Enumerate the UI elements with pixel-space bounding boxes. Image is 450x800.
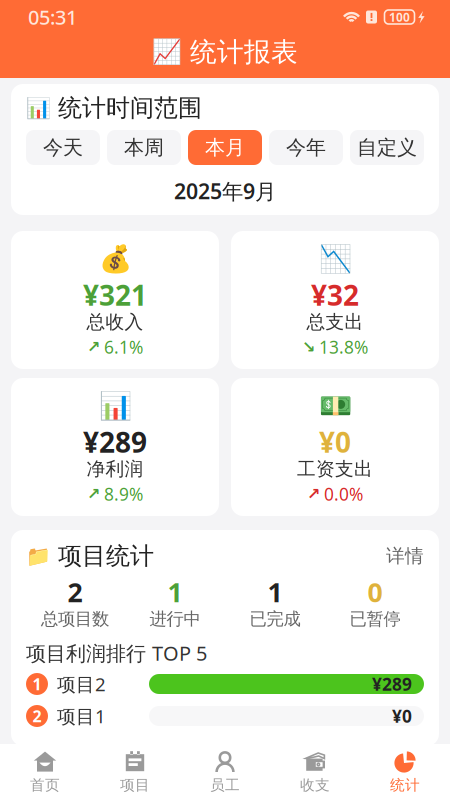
staticText: 6.1% [104,335,143,358]
button[interactable]: 收支 [270,748,360,796]
staticText: 总支出 [306,310,363,333]
staticText: 1 [167,574,182,610]
button[interactable]: 本月 [188,130,262,165]
staticText: ¥32 [311,276,359,314]
staticText: 1 [32,673,41,695]
staticText: 📁 [26,545,51,567]
staticText: 今年 [286,135,326,160]
staticText: 总项目数 [41,608,109,630]
staticText: ¥321 [83,276,147,314]
button[interactable]: 详情 [386,544,424,567]
button[interactable]: 员工 [180,748,270,796]
staticText: ↗ [307,485,320,503]
staticText: 项目1 [57,704,106,728]
staticText: 进行中 [149,608,200,630]
staticText: ¥289 [83,423,147,461]
button[interactable]: 项目 [90,748,180,796]
staticText: 收支 [300,776,330,794]
button[interactable]: 今年 [269,130,343,165]
button[interactable]: 今天 [26,130,100,165]
staticText: 员工 [210,776,240,794]
staticText: 本月 [205,135,245,160]
staticText: 项目利润排行 TOP 5 [26,640,207,666]
staticText: 📈 [152,38,182,66]
button[interactable]: 首页 [0,748,90,796]
staticText: 05:31 [28,4,77,30]
staticText: 8.9% [104,482,143,505]
staticText: 项目2 [57,672,106,696]
staticText: ↗ [87,338,100,356]
staticText: 2 [32,705,41,727]
staticText: 13.8% [319,335,368,358]
button[interactable]: 统计 [360,748,450,796]
staticText: 已完成 [249,608,300,630]
staticText: ¥0 [319,423,351,461]
staticText: 详情 [386,544,424,567]
staticText: 0 [367,574,382,610]
staticText: 本周 [124,135,164,160]
button[interactable]: 本周 [107,130,181,165]
staticText: 净利润 [86,457,143,480]
staticText: 工资支出 [297,457,373,480]
staticText: 项目统计 [58,541,154,571]
staticText: 📊 [98,391,131,421]
staticText: 项目 [120,776,150,794]
staticText: 总收入 [86,310,143,333]
staticText: 0.0% [324,482,363,505]
staticText: ¥0 [392,704,412,727]
staticText: 统计 [390,776,420,794]
staticText: 2025年9月 [174,177,276,205]
staticText: 💵 [318,391,351,421]
staticText: 💰 [98,244,131,274]
staticText: 100 [389,9,410,25]
staticText: 统计时间范围 [58,93,202,123]
staticText: 📊 [26,97,51,119]
staticText: 1 [267,574,282,610]
staticText: 今天 [43,135,83,160]
staticText: 📉 [318,244,351,274]
staticText: 首页 [30,776,60,794]
staticText: 已暂停 [349,608,400,630]
staticText: ↘ [302,338,315,356]
staticText: ↗ [87,485,100,503]
staticText: 2 [67,574,82,610]
staticText: 自定义 [357,135,417,160]
staticText: 统计报表 [190,36,298,68]
staticText: ¥289 [372,672,412,695]
button[interactable]: 自定义 [350,130,424,165]
